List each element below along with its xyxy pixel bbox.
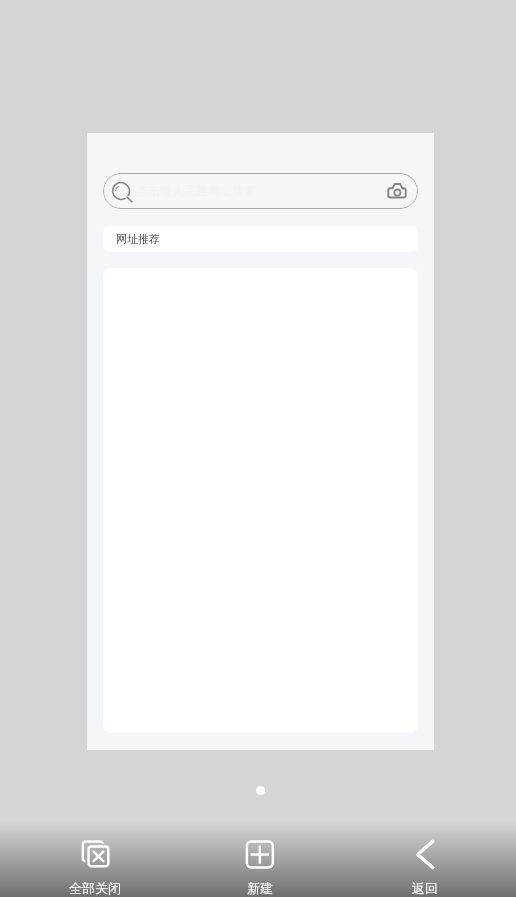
staticText: 全部关闭	[69, 880, 121, 896]
button[interactable]: 网址推荐	[103, 226, 418, 252]
button[interactable]: Search by image	[374, 173, 418, 209]
staticText: 新建	[247, 880, 273, 896]
staticText: 网址推荐	[116, 232, 160, 246]
button[interactable]: New tab	[210, 823, 310, 897]
button[interactable]: Tab preview	[87, 133, 434, 750]
staticText: 返回	[412, 880, 438, 896]
button[interactable]: 点击输入完整网址搜索	[103, 173, 371, 209]
button[interactable]: Back	[375, 823, 475, 897]
button[interactable]: Close all tabs	[45, 823, 145, 897]
